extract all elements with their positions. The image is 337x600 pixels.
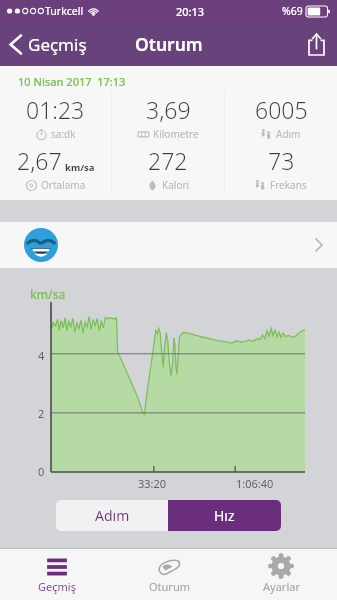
- staticText: Adım: [276, 127, 301, 141]
- button[interactable]: 272: [112, 143, 224, 194]
- staticText: 01:23: [26, 94, 85, 125]
- staticText: Kalori: [162, 178, 190, 192]
- staticText: 73: [268, 145, 295, 176]
- staticText: 1:06:40: [236, 476, 274, 491]
- button[interactable]: Adım: [56, 500, 168, 531]
- button[interactable]: [0, 222, 337, 268]
- staticText: Hız: [214, 506, 235, 525]
- staticText: km/sa: [30, 286, 66, 302]
- staticText: Ayarlar: [263, 579, 300, 594]
- button[interactable]: 2,67: [0, 143, 111, 194]
- staticText: %69: [282, 4, 303, 18]
- staticText: Adım: [95, 506, 130, 525]
- button[interactable]: 01:23: [0, 92, 111, 143]
- button[interactable]: Ayarlar: [225, 549, 337, 600]
- staticText: 2,67: [17, 145, 62, 176]
- staticText: 10 Nisan 2017 17:13: [18, 74, 126, 89]
- button[interactable]: 6005: [225, 92, 337, 143]
- staticText: 272: [148, 145, 188, 176]
- button[interactable]: Geçmiş: [0, 549, 113, 600]
- button[interactable]: Geçmiş: [0, 27, 97, 62]
- staticText: km/sa: [65, 161, 95, 174]
- staticText: 6005: [255, 94, 308, 125]
- button[interactable]: 3,69: [112, 92, 224, 143]
- button[interactable]: 73: [225, 143, 337, 194]
- staticText: Oturum: [135, 32, 203, 56]
- staticText: Kilometre: [153, 127, 199, 141]
- button[interactable]: Hız: [168, 500, 281, 531]
- staticText: Turkcell: [45, 4, 84, 18]
- button[interactable]: Oturum: [113, 549, 225, 600]
- staticText: 0: [38, 464, 45, 479]
- staticText: Geçmiş: [38, 579, 76, 594]
- staticText: Ortalama: [41, 178, 86, 192]
- staticText: sa:dk: [51, 127, 76, 141]
- staticText: 3,69: [146, 94, 191, 125]
- staticText: 33:20: [138, 476, 167, 491]
- staticText: Geçmiş: [28, 33, 87, 56]
- staticText: 20:13: [176, 4, 205, 19]
- staticText: 4: [38, 348, 45, 363]
- button[interactable]: Share: [296, 25, 337, 64]
- staticText: 2: [38, 406, 45, 421]
- staticText: Oturum: [149, 579, 190, 594]
- staticText: Frekans: [270, 178, 307, 192]
